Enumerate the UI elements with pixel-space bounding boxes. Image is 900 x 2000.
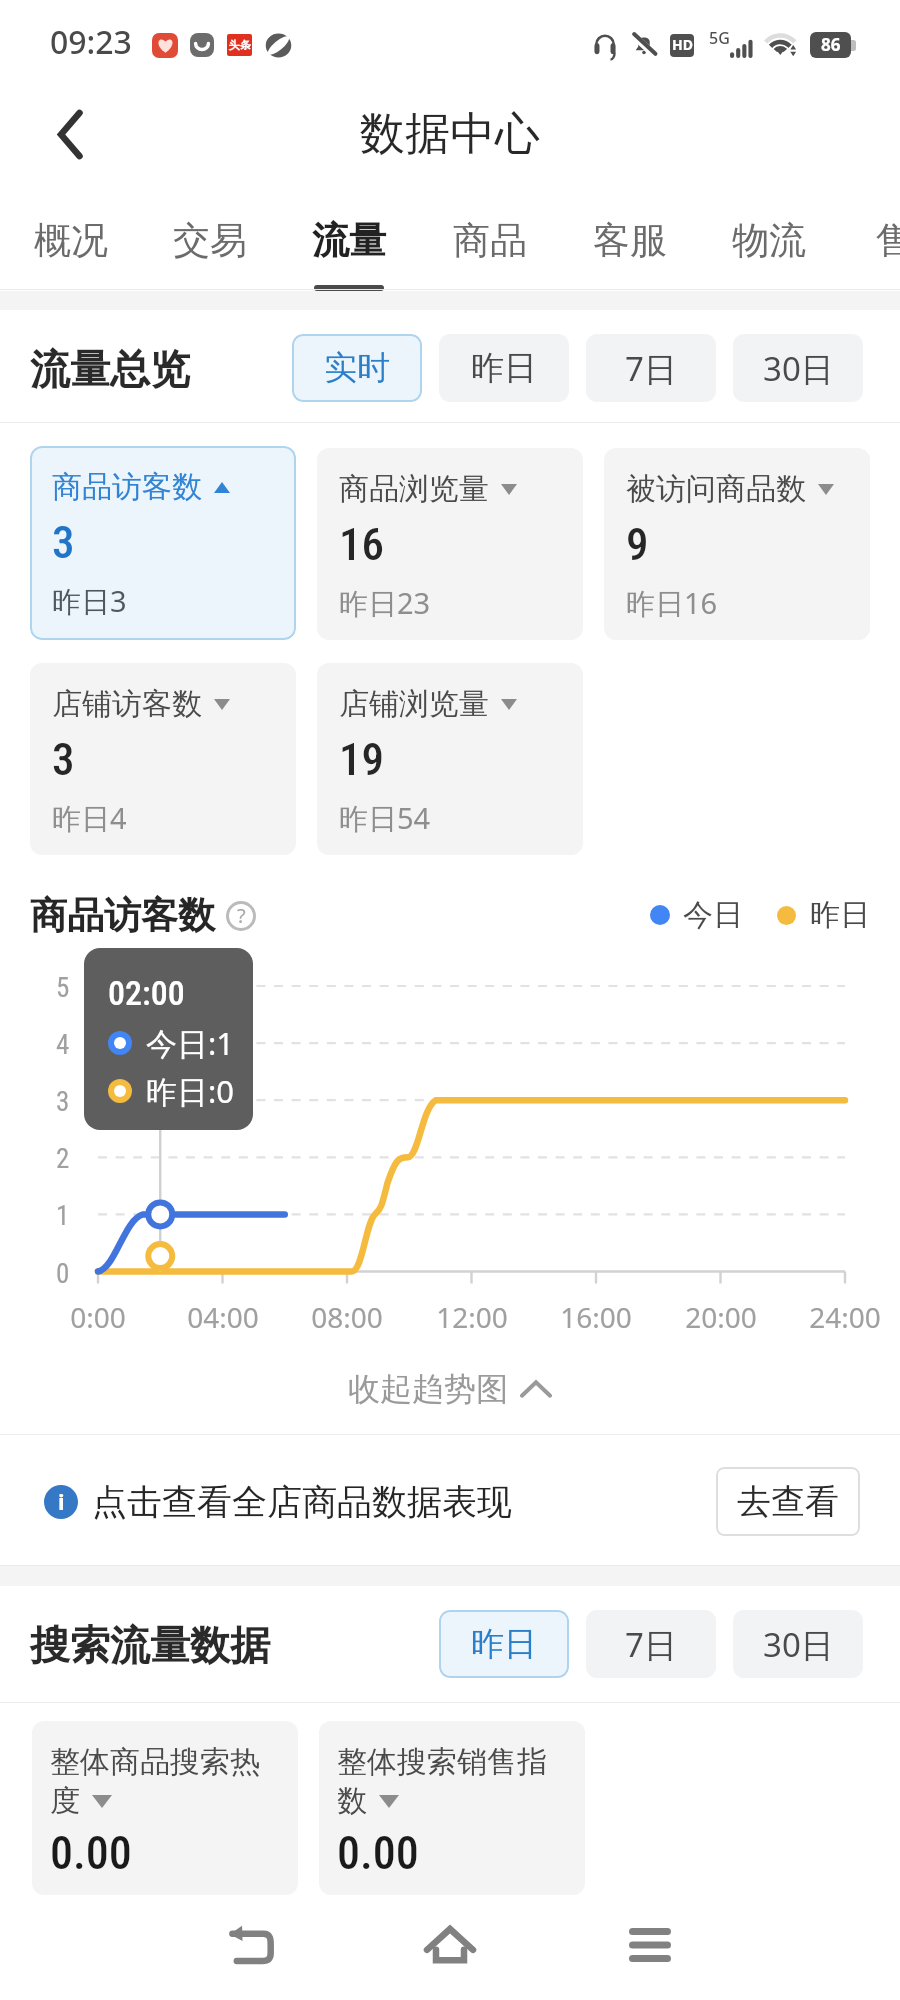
staticText: 0.00 xyxy=(337,1826,419,1880)
button[interactable]: 实时 xyxy=(292,334,422,402)
staticText: 昨日4 xyxy=(52,798,127,838)
button[interactable]: 商品 xyxy=(445,196,535,290)
staticText: 售 xyxy=(868,217,900,264)
button[interactable]: Back xyxy=(37,101,103,167)
staticText: 1 xyxy=(56,1200,70,1232)
staticText: 店铺浏览量 xyxy=(339,685,489,723)
staticText: 流量 xyxy=(304,217,394,264)
button[interactable]: 整体搜索销售指 xyxy=(319,1721,585,1895)
staticText: 02:00 xyxy=(108,973,185,1013)
staticText: 今日 xyxy=(683,896,743,934)
button[interactable]: 7日 xyxy=(586,1610,716,1678)
staticText: 04:00 xyxy=(163,1298,283,1336)
staticText: 交易 xyxy=(165,217,255,264)
staticText: 实时 xyxy=(324,347,390,389)
staticText: 昨日 xyxy=(471,1623,537,1665)
staticText: 30日 xyxy=(763,346,834,391)
staticText: 08:00 xyxy=(287,1298,407,1336)
button[interactable]: 30日 xyxy=(733,334,863,402)
staticText: ? xyxy=(237,902,246,929)
button[interactable]: 去查看 xyxy=(716,1467,860,1536)
button[interactable]: 流量 xyxy=(304,196,394,290)
button[interactable]: 商品浏览量 xyxy=(317,448,583,640)
staticText: 今日:1 xyxy=(146,1022,235,1064)
button[interactable]: 昨日 xyxy=(439,334,569,402)
staticText: 收起趋势图 xyxy=(348,1369,508,1409)
staticText: 被访问商品数 xyxy=(626,470,806,508)
staticText: 5 xyxy=(56,972,70,1004)
staticText: 16 xyxy=(339,518,384,571)
staticText: 7日 xyxy=(625,346,677,391)
button[interactable]: 客服 xyxy=(585,196,675,290)
button[interactable]: 售 xyxy=(868,196,900,290)
staticText: 24:00 xyxy=(785,1298,900,1336)
staticText: i xyxy=(58,1486,65,1516)
staticText: 头条 xyxy=(229,38,251,52)
staticText: 昨日 xyxy=(471,347,537,389)
staticText: 2 xyxy=(56,1143,70,1175)
staticText: 商品访客数 xyxy=(30,892,215,939)
staticText: 昨日:0 xyxy=(146,1070,235,1112)
staticText: 20:00 xyxy=(661,1298,781,1336)
button[interactable]: Recent apps xyxy=(605,1900,695,1990)
button[interactable]: Help xyxy=(225,900,257,932)
staticText: 昨日23 xyxy=(339,583,431,623)
button[interactable]: 收起趋势图 xyxy=(348,1369,552,1409)
staticText: 数据中心 xyxy=(360,106,540,163)
staticText: 3 xyxy=(56,1086,70,1118)
staticText: 12:00 xyxy=(412,1298,532,1336)
staticText: 昨日3 xyxy=(52,581,127,621)
staticText: 客服 xyxy=(585,217,675,264)
staticText: 流量总览 xyxy=(30,344,190,394)
staticText: 概况 xyxy=(26,217,116,264)
staticText: 商品 xyxy=(445,217,535,264)
button[interactable]: 被访问商品数 xyxy=(604,448,870,640)
staticText: 30日 xyxy=(763,1622,834,1667)
button[interactable]: 交易 xyxy=(165,196,255,290)
staticText: 0.00 xyxy=(50,1826,132,1880)
staticText: 点击查看全店商品数据表现 xyxy=(92,1480,512,1524)
button[interactable]: 整体商品搜索热 xyxy=(32,1721,298,1895)
staticText: 商品访客数 xyxy=(52,468,202,506)
staticText: 3 xyxy=(52,733,75,786)
staticText: 去查看 xyxy=(737,1480,839,1523)
button[interactable]: 物流 xyxy=(724,196,814,290)
staticText: 16:00 xyxy=(536,1298,656,1336)
staticText: 09:23 xyxy=(50,20,132,64)
button[interactable]: Back xyxy=(205,1900,295,1990)
button[interactable]: 30日 xyxy=(733,1610,863,1678)
staticText: 4 xyxy=(56,1029,70,1061)
staticText: 3 xyxy=(52,516,75,569)
staticText: 物流 xyxy=(724,217,814,264)
staticText: 86 xyxy=(821,33,841,56)
button[interactable]: 昨日 xyxy=(439,1610,569,1678)
staticText: 19 xyxy=(339,733,384,786)
staticText: 搜索流量数据 xyxy=(30,1620,270,1670)
staticText: HD xyxy=(672,35,693,54)
staticText: 商品浏览量 xyxy=(339,470,489,508)
staticText: 昨日16 xyxy=(626,583,718,623)
staticText: 0:00 xyxy=(38,1298,158,1336)
staticText: 昨日54 xyxy=(339,798,431,838)
staticText: 5G xyxy=(709,27,730,49)
button[interactable]: 概况 xyxy=(26,196,116,290)
button[interactable]: Home xyxy=(405,1900,495,1990)
button[interactable]: 7日 xyxy=(586,334,716,402)
staticText: 0 xyxy=(56,1258,70,1290)
staticText: 整体搜索销售指 xyxy=(337,1743,547,1781)
staticText: 店铺访客数 xyxy=(52,685,202,723)
staticText: 度 xyxy=(50,1782,80,1820)
button[interactable]: 店铺浏览量 xyxy=(317,663,583,855)
staticText: 昨日 xyxy=(810,896,870,934)
staticText: 数 xyxy=(337,1782,367,1820)
staticText: 7日 xyxy=(625,1622,677,1667)
staticText: 整体商品搜索热 xyxy=(50,1743,260,1781)
button[interactable]: 商品访客数 xyxy=(30,446,296,640)
staticText: 9 xyxy=(626,518,649,571)
button[interactable]: 店铺访客数 xyxy=(30,663,296,855)
